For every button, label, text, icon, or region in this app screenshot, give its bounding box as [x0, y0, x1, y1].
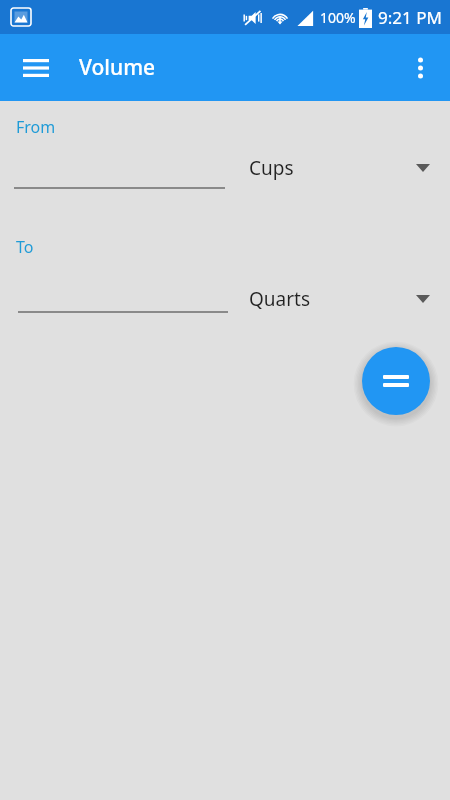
button[interactable]: To value input [18, 275, 228, 313]
button[interactable]: Open navigation drawer [12, 44, 60, 92]
button[interactable]: From value input [14, 151, 225, 189]
staticText: Volume [79, 53, 156, 82]
staticText: 9:21 PM [378, 6, 442, 29]
button[interactable]: More options [396, 44, 444, 92]
staticText: To [16, 236, 34, 258]
button[interactable]: To unit: Quarts [249, 278, 444, 320]
staticText: 100% [320, 8, 356, 27]
staticText: Quarts [249, 286, 416, 312]
staticText: From [16, 116, 56, 138]
staticText: Cups [249, 155, 416, 181]
button[interactable]: From unit: Cups [249, 147, 444, 189]
button[interactable]: Calculate, equals [362, 347, 430, 415]
